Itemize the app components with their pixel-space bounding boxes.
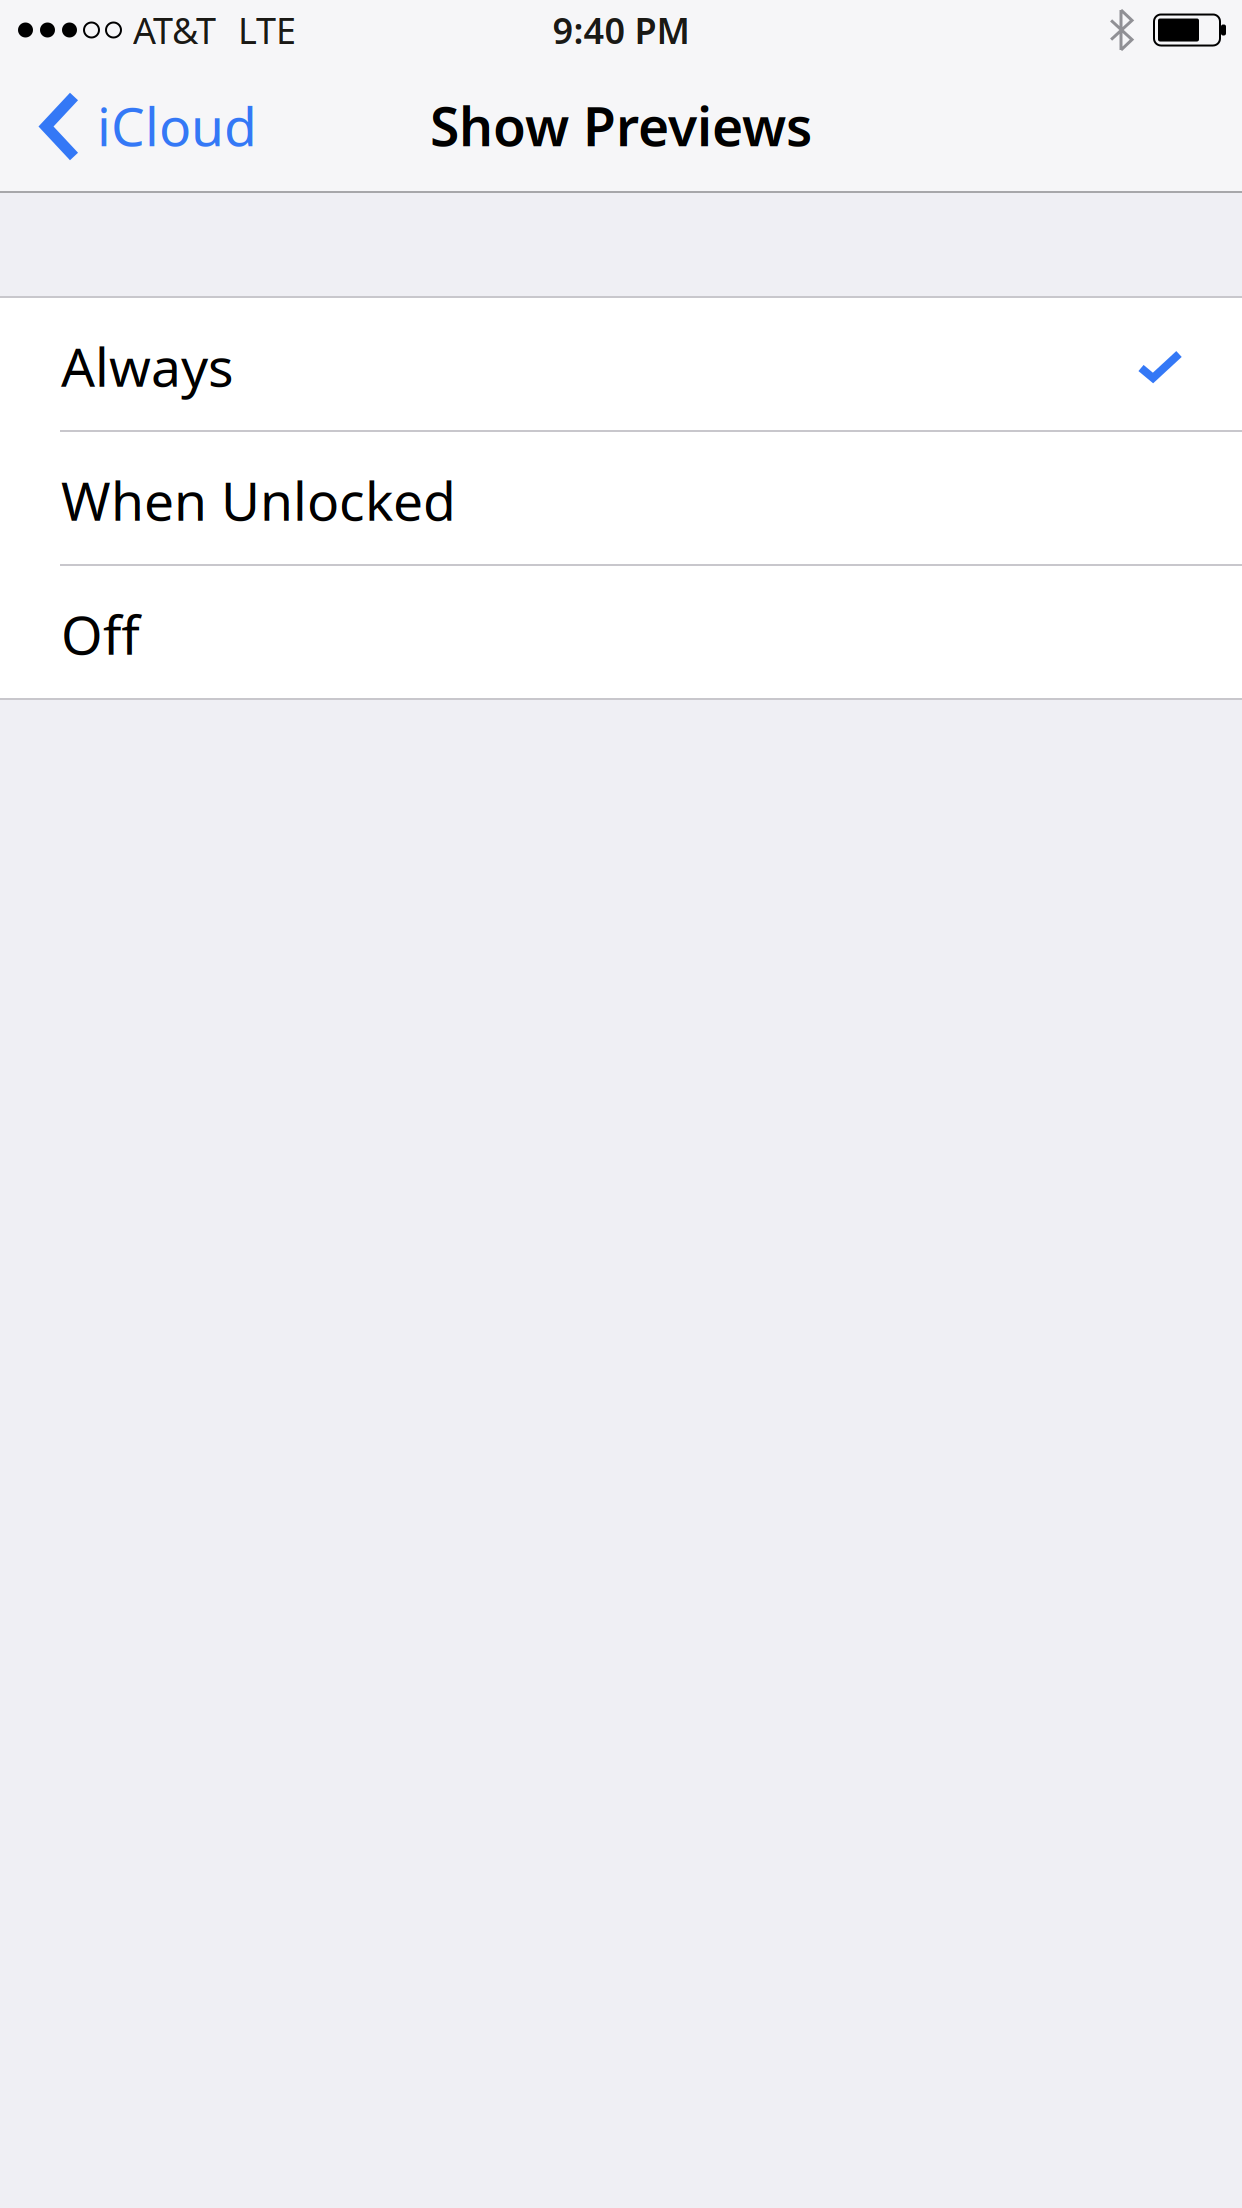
staticText: AT&T xyxy=(133,6,216,54)
button[interactable]: Back to iCloud xyxy=(0,90,257,161)
staticText: When Unlocked xyxy=(61,465,456,535)
staticText: Show Previews xyxy=(430,90,812,161)
staticText: iCloud xyxy=(97,90,257,161)
staticText: 9:40 PM xyxy=(552,6,689,54)
staticText: Always xyxy=(61,331,234,401)
staticText: LTE xyxy=(238,6,296,54)
button[interactable]: When Unlocked xyxy=(0,432,1242,564)
button[interactable]: Always xyxy=(0,298,1242,430)
button[interactable]: Off xyxy=(0,566,1242,698)
staticText: Off xyxy=(61,599,140,669)
